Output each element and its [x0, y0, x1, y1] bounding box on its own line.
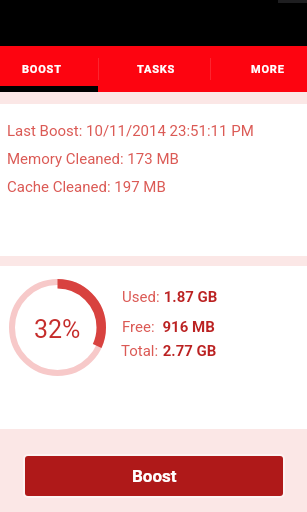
- staticText: Boost: [132, 466, 177, 486]
- staticText: Total:: [121, 342, 159, 360]
- staticText: Last Boost: 10/11/2014 23:51:11 PM: [7, 122, 254, 140]
- button[interactable]: TASKS: [105, 46, 207, 92]
- staticText: Memory Cleaned: 173 MB: [7, 150, 179, 168]
- staticText: MORE: [251, 63, 285, 76]
- button[interactable]: BOOST: [0, 46, 93, 92]
- staticText: Used:: [122, 288, 160, 306]
- staticText: 2.77 GB: [159, 342, 217, 360]
- staticText: 916 MB: [155, 318, 215, 336]
- staticText: 1.87 GB: [160, 288, 218, 306]
- button[interactable]: Boost: [25, 456, 283, 496]
- staticText: TASKS: [137, 63, 176, 76]
- staticText: Cache Cleaned: 197 MB: [7, 178, 166, 196]
- staticText: 32%: [34, 315, 81, 344]
- staticText: BOOST: [22, 63, 62, 76]
- button[interactable]: MORE: [217, 46, 307, 92]
- staticText: Free:: [122, 318, 155, 336]
